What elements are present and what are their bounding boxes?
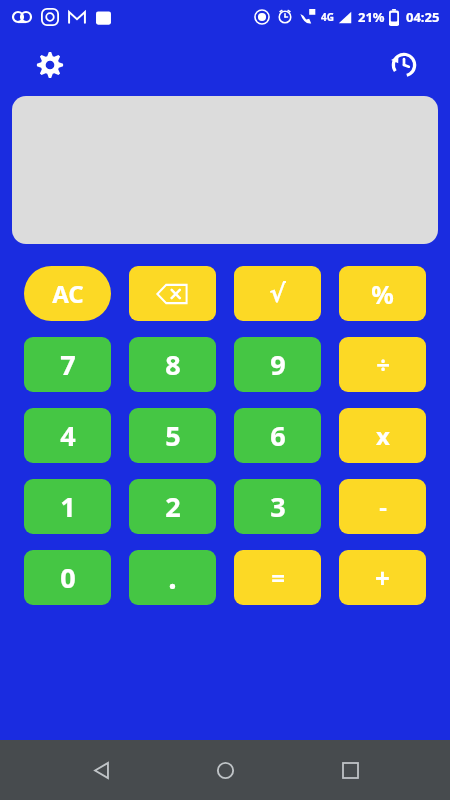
staticText: 5 — [165, 417, 181, 454]
button[interactable]: . — [129, 550, 216, 605]
staticText: 1 — [60, 488, 76, 525]
button[interactable]: 2 — [129, 479, 216, 534]
staticText: % — [371, 277, 394, 311]
button[interactable]: 5 — [129, 408, 216, 463]
button[interactable]: Back — [77, 746, 125, 794]
button[interactable]: Backspace — [129, 266, 216, 321]
staticText: 21% — [358, 8, 385, 26]
staticText: ÷ — [376, 348, 390, 381]
staticText: 7 — [60, 346, 76, 383]
button[interactable]: Settings — [28, 43, 72, 87]
staticText: = — [271, 561, 285, 594]
staticText: . — [168, 557, 177, 598]
staticText: 3 — [270, 488, 286, 525]
button[interactable]: 0 — [24, 550, 111, 605]
button[interactable]: = — [234, 550, 321, 605]
button[interactable]: History — [382, 43, 426, 87]
staticText: 04:25 — [406, 8, 440, 26]
staticText: 6 — [270, 417, 286, 454]
button[interactable]: 4 — [24, 408, 111, 463]
button[interactable]: 1 — [24, 479, 111, 534]
staticText: x — [376, 419, 390, 452]
button[interactable]: AC — [24, 266, 111, 321]
button[interactable]: + — [339, 550, 426, 605]
button[interactable] — [12, 96, 438, 244]
staticText: 9 — [270, 346, 286, 383]
button[interactable]: x — [339, 408, 426, 463]
button[interactable]: 6 — [234, 408, 321, 463]
button[interactable]: - — [339, 479, 426, 534]
staticText: √ — [269, 279, 286, 308]
staticText: 4G — [321, 10, 334, 24]
button[interactable]: 7 — [24, 337, 111, 392]
button[interactable]: ÷ — [339, 337, 426, 392]
staticText: - — [379, 490, 387, 523]
button[interactable]: 3 — [234, 479, 321, 534]
staticText: 0 — [60, 559, 76, 596]
button[interactable]: Recent apps — [326, 746, 374, 794]
button[interactable]: 8 — [129, 337, 216, 392]
staticText: AC — [52, 277, 84, 310]
button[interactable]: % — [339, 266, 426, 321]
button[interactable]: Home — [201, 746, 249, 794]
button[interactable]: 9 — [234, 337, 321, 392]
staticText: 4 — [60, 417, 76, 454]
staticText: + — [375, 560, 390, 595]
staticText: 8 — [165, 346, 181, 383]
button[interactable]: √ — [234, 266, 321, 321]
staticText: 2 — [165, 488, 181, 525]
